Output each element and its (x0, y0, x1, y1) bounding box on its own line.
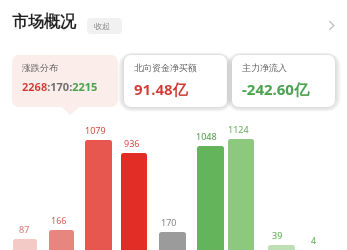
staticText: 91.48亿 (134, 79, 188, 99)
button[interactable]: 展开 (321, 15, 342, 36)
staticText: 收起 (94, 21, 110, 31)
staticText: 1079 (85, 124, 106, 136)
button[interactable]: 市场概况 (12, 12, 76, 32)
button[interactable]: 收起 (87, 18, 122, 34)
button[interactable]: 涨跌分布 (12, 55, 118, 107)
staticText: 1048 (196, 130, 217, 142)
staticText: 涨跌分布 (22, 62, 58, 73)
staticText: 936 (124, 137, 140, 149)
staticText: 北向资金净买额 (134, 62, 197, 73)
staticText: 市场概况 (12, 12, 76, 32)
button[interactable]: 主力净流入 (232, 55, 335, 107)
staticText: 87 (19, 223, 30, 235)
staticText: 主力净流入 (242, 62, 287, 73)
staticText: 166 (51, 214, 67, 226)
staticText: 39 (272, 229, 283, 241)
staticText: 4 (311, 234, 317, 246)
staticText: -242.60亿 (242, 79, 309, 99)
staticText: 1124 (228, 123, 249, 135)
staticText: 170 (161, 216, 177, 228)
button[interactable]: 北向资金净买额 (124, 55, 227, 107)
staticText: 2268:170:2215 (22, 79, 98, 94)
